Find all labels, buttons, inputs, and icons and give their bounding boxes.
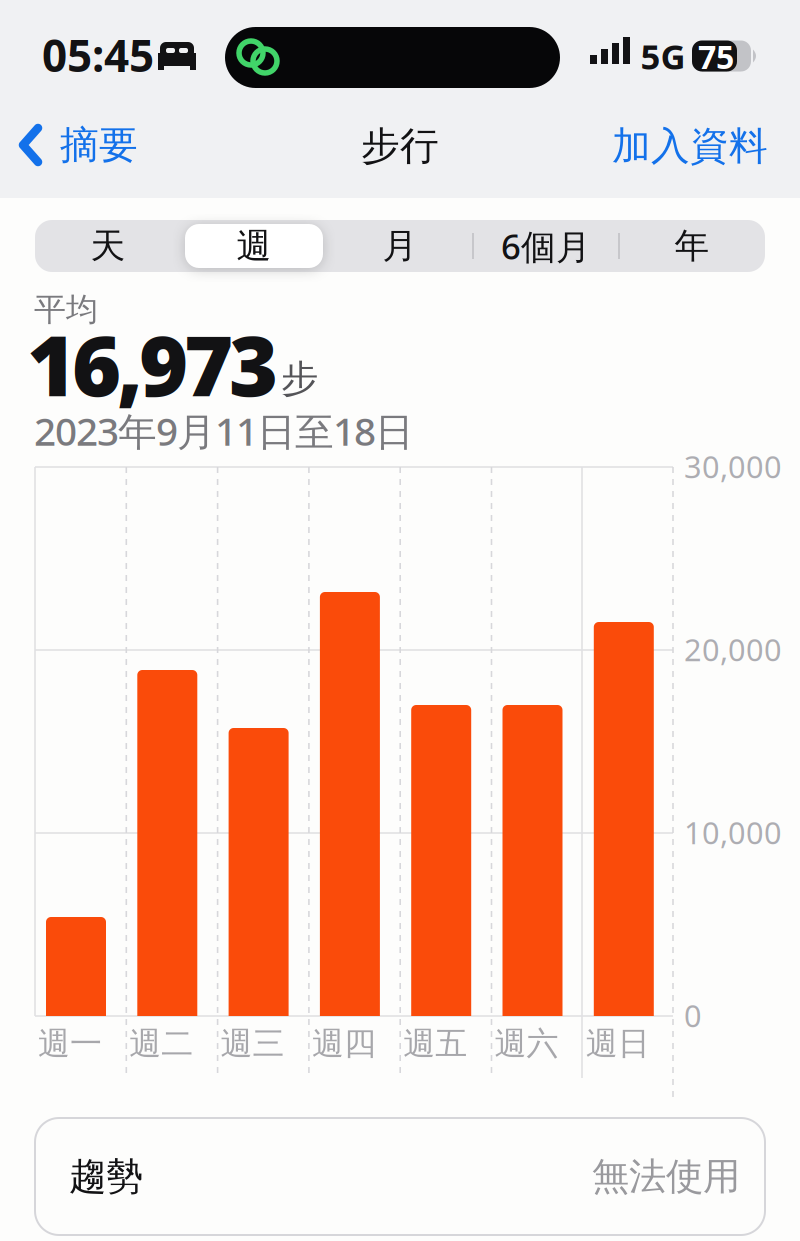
staticText: 6個月 — [501, 223, 591, 269]
staticText: 30,000 — [684, 446, 782, 487]
staticText: 05:45 — [42, 26, 154, 84]
staticText: 75 — [698, 35, 734, 78]
button[interactable]: 天 — [35, 220, 181, 272]
staticText: 週二 — [129, 1024, 193, 1063]
staticText: 週 — [236, 225, 271, 267]
button[interactable]: 加入資料 — [612, 122, 768, 170]
staticText: 週一 — [38, 1024, 102, 1063]
button[interactable]: 返回摘要 — [20, 120, 138, 170]
staticText: 加入資料 — [612, 122, 768, 170]
staticText: 平均 — [34, 290, 98, 329]
staticText: 0 — [684, 995, 702, 1036]
staticText: 天 — [90, 225, 125, 267]
button[interactable]: 月 — [327, 220, 473, 272]
button[interactable]: 6個月 — [473, 220, 619, 272]
staticText: 5G — [640, 33, 685, 79]
staticText: 週四 — [312, 1024, 376, 1063]
button[interactable]: 週 — [181, 220, 327, 272]
button[interactable]: 年 — [619, 220, 765, 272]
staticText: 20,000 — [684, 629, 782, 670]
staticText: 週日 — [586, 1024, 650, 1063]
staticText: 趨勢 — [69, 1154, 143, 1199]
staticText: 10,000 — [684, 812, 782, 853]
staticText: 摘要 — [60, 121, 138, 169]
staticText: 週三 — [221, 1024, 285, 1063]
staticText: 無法使用 — [592, 1154, 740, 1199]
staticText: 月 — [382, 225, 417, 267]
staticText: 年 — [674, 225, 709, 267]
staticText: 2023年9月11日至18日 — [34, 405, 414, 456]
staticText: 步行 — [361, 122, 439, 170]
staticText: 步 — [281, 356, 318, 402]
staticText: 週六 — [494, 1024, 558, 1063]
staticText: 16,973 — [27, 308, 278, 419]
staticText: 週五 — [403, 1024, 467, 1063]
